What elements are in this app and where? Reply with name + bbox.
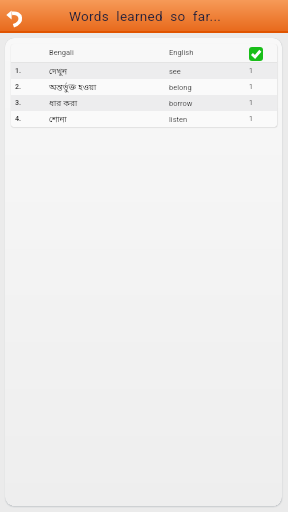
button[interactable]: 2. — [11, 79, 277, 95]
staticText: দেখুন — [49, 66, 169, 77]
staticText: borrow — [169, 99, 249, 108]
button[interactable]: 4. — [11, 111, 277, 127]
button[interactable]: Back — [2, 2, 30, 30]
staticText: ধার করা — [49, 98, 169, 109]
staticText: 1 — [249, 83, 263, 91]
button[interactable]: 1. — [11, 63, 277, 79]
staticText: English — [169, 48, 249, 57]
staticText: 1 — [249, 115, 263, 123]
staticText: see — [169, 67, 249, 76]
staticText: 3. — [15, 99, 49, 107]
button[interactable]: 3. — [11, 95, 277, 111]
staticText: 4. — [15, 115, 49, 123]
button[interactable]: Select all — [249, 47, 263, 61]
staticText: Words learned so far... — [69, 8, 222, 24]
staticText: Bengali — [49, 48, 169, 57]
staticText: শোনা — [49, 114, 169, 125]
staticText: 1 — [249, 67, 263, 75]
staticText: listen — [169, 115, 249, 124]
staticText: belong — [169, 83, 249, 92]
staticText: অন্তর্ভুক্ত হওয়া — [49, 82, 169, 93]
staticText: 1 — [249, 99, 263, 107]
staticText: 2. — [15, 83, 49, 91]
staticText: 1. — [15, 67, 49, 75]
